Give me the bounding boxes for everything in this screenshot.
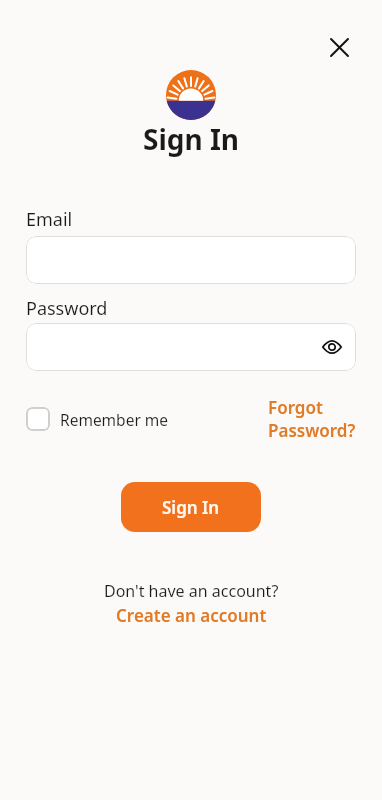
button[interactable]: Forgot Password? bbox=[268, 396, 356, 442]
staticText: Remember me bbox=[60, 409, 169, 430]
staticText: Sign In bbox=[162, 496, 220, 519]
button[interactable] bbox=[26, 323, 356, 371]
button[interactable]: Create an account bbox=[116, 604, 267, 627]
button[interactable] bbox=[26, 236, 356, 284]
staticText: Email bbox=[26, 207, 73, 232]
button[interactable] bbox=[322, 337, 342, 357]
button[interactable] bbox=[319, 27, 359, 67]
staticText: Don't have an account? bbox=[104, 580, 279, 602]
staticText: Sign In bbox=[143, 120, 240, 158]
button[interactable]: Remember me bbox=[26, 407, 169, 431]
staticText: Password bbox=[26, 296, 108, 321]
button[interactable]: Sign In bbox=[121, 482, 261, 532]
